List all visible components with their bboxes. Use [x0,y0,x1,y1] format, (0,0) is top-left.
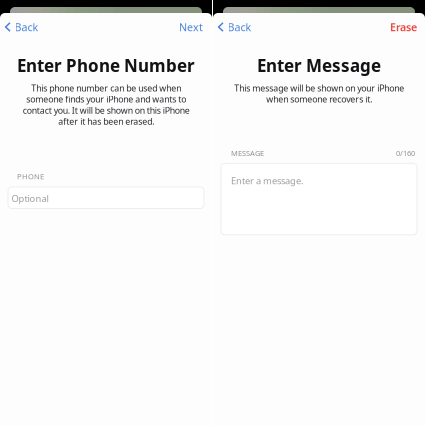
button[interactable]: Erase [382,16,425,38]
staticText: Next [179,20,203,34]
staticText: Erase [390,20,417,34]
staticText: 0/160 [396,148,415,158]
staticText: MESSAGE [231,148,264,158]
staticText: Enter a message. [231,174,304,187]
staticText: Back [228,20,252,34]
staticText: This phone number can be used when someo… [22,82,189,127]
button[interactable]: Back [0,15,47,39]
button[interactable]: Next [170,16,212,38]
staticText: Enter Phone Number [17,54,195,77]
staticText: Optional [11,192,48,205]
staticText: This message will be shown on your iPhon… [234,82,404,105]
staticText: PHONE [17,171,44,181]
staticText: Back [15,20,39,34]
staticText: Enter Message [257,54,381,77]
button[interactable]: Back [213,15,260,39]
